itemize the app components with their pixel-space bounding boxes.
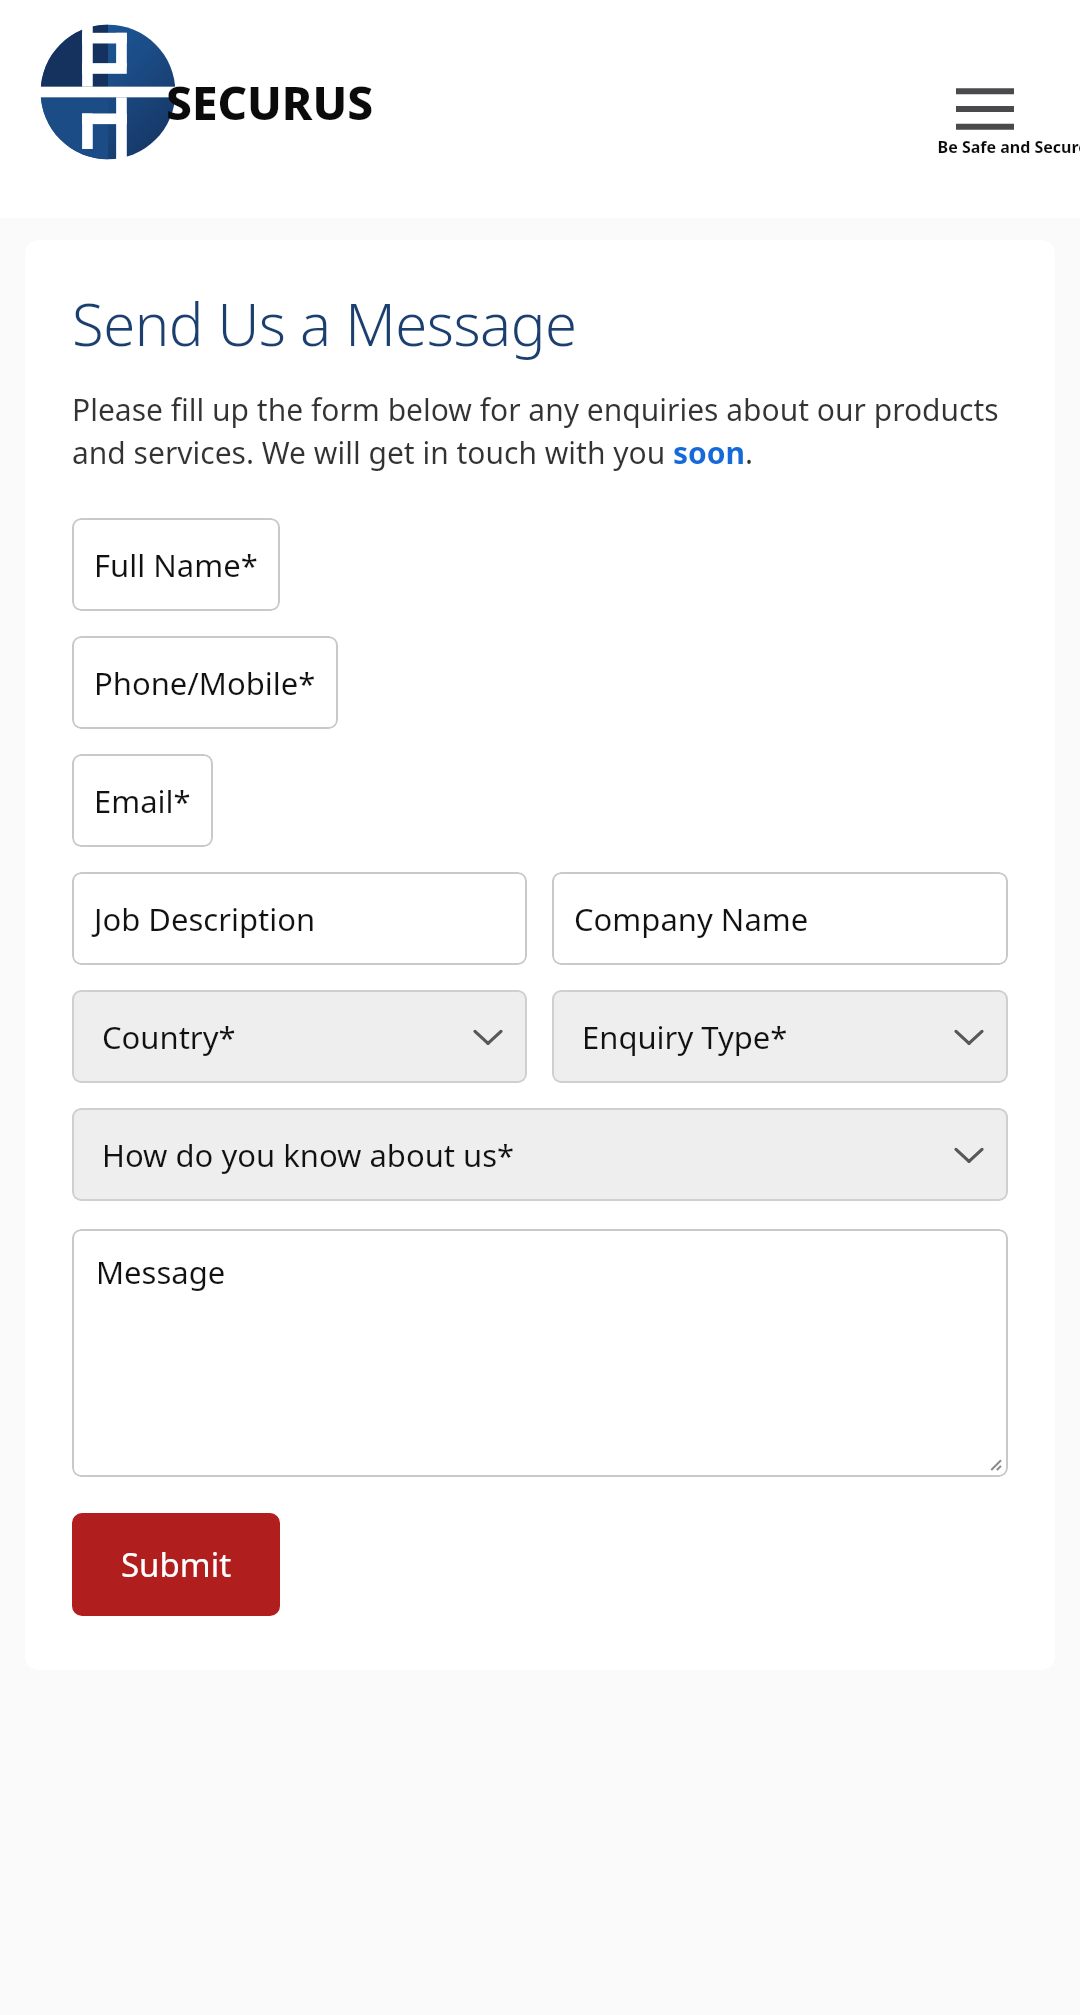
button[interactable]: Company Name: [552, 872, 1008, 965]
staticText: How do you know about us*: [102, 1134, 956, 1176]
button[interactable]: How do you know about us*: [72, 1108, 1008, 1201]
staticText: Please fill up the form below for any en…: [72, 389, 1008, 473]
button[interactable]: Message: [72, 1229, 1008, 1477]
staticText: SECURUS: [166, 71, 374, 134]
button[interactable]: Open navigation menu: [942, 66, 1028, 152]
button[interactable]: Full Name*: [72, 518, 280, 611]
button[interactable]: Securus home: [34, 18, 1080, 166]
staticText: Enquiry Type*: [582, 1016, 956, 1058]
staticText: Submit: [121, 1542, 232, 1587]
staticText: Message: [96, 1251, 226, 1293]
button[interactable]: Enquiry Type*: [552, 990, 1008, 1083]
staticText: Full Name*: [94, 544, 258, 586]
staticText: Country*: [102, 1016, 475, 1058]
button[interactable]: Job Description: [72, 872, 527, 965]
staticText: Be Safe and Secured: [166, 136, 1080, 158]
staticText: Phone/Mobile*: [94, 662, 316, 704]
staticText: Send Us a Message: [72, 284, 577, 363]
button[interactable]: Email*: [72, 754, 213, 847]
staticText: Job Description: [94, 898, 316, 940]
button[interactable]: Phone/Mobile*: [72, 636, 338, 729]
button[interactable]: Country*: [72, 990, 527, 1083]
button[interactable]: Submit: [72, 1513, 280, 1616]
staticText: Email*: [94, 780, 191, 822]
staticText: Company Name: [574, 898, 809, 940]
